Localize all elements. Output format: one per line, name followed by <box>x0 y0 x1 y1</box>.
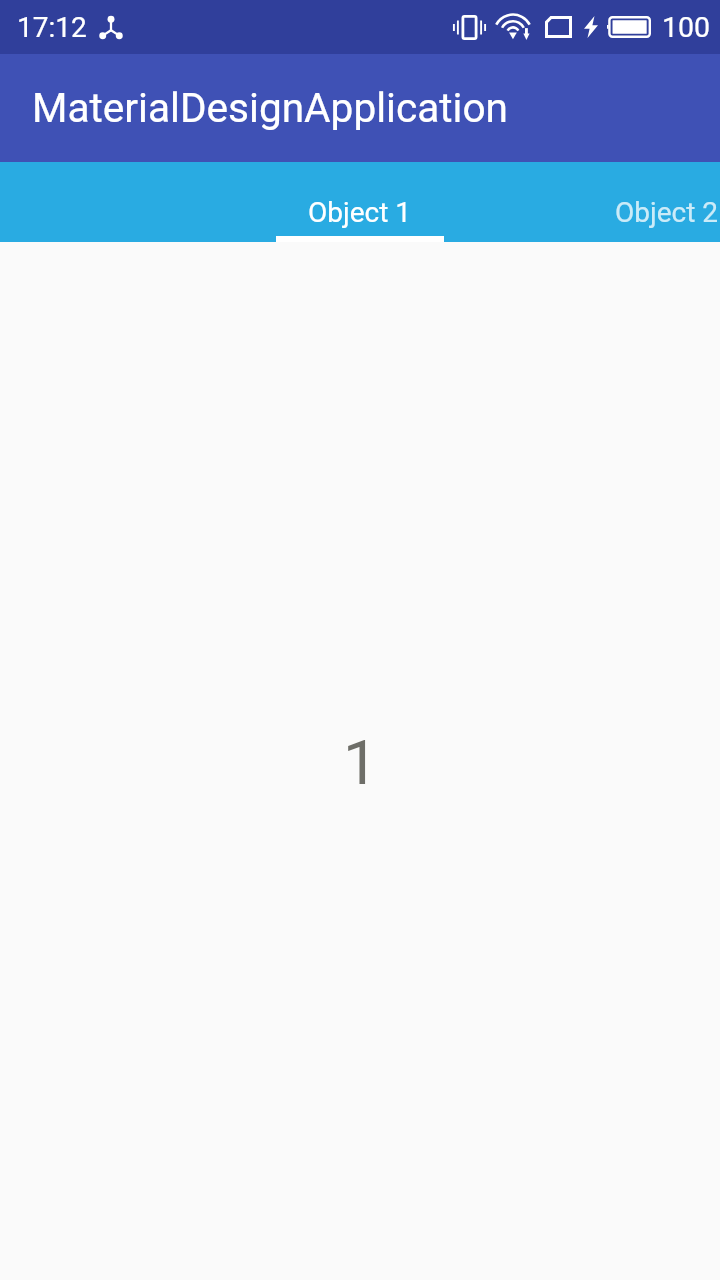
other: SIM card <box>545 16 572 38</box>
staticText: 17:12 <box>17 11 87 44</box>
staticText: Object 1 <box>308 196 412 229</box>
other: Wi-Fi connected <box>499 13 530 40</box>
other: Cast connected <box>99 16 123 39</box>
staticText: 1 <box>343 726 378 799</box>
staticText: MaterialDesignApplication <box>32 84 508 132</box>
other: Charging <box>584 16 598 38</box>
other: Battery full <box>607 16 651 38</box>
staticText: 100 <box>662 11 711 44</box>
staticText: Object 2 <box>615 196 719 229</box>
button[interactable]: Object 1 <box>206 162 513 242</box>
button[interactable]: Object 2 <box>513 162 720 242</box>
other: Vibrate mode <box>454 15 485 40</box>
